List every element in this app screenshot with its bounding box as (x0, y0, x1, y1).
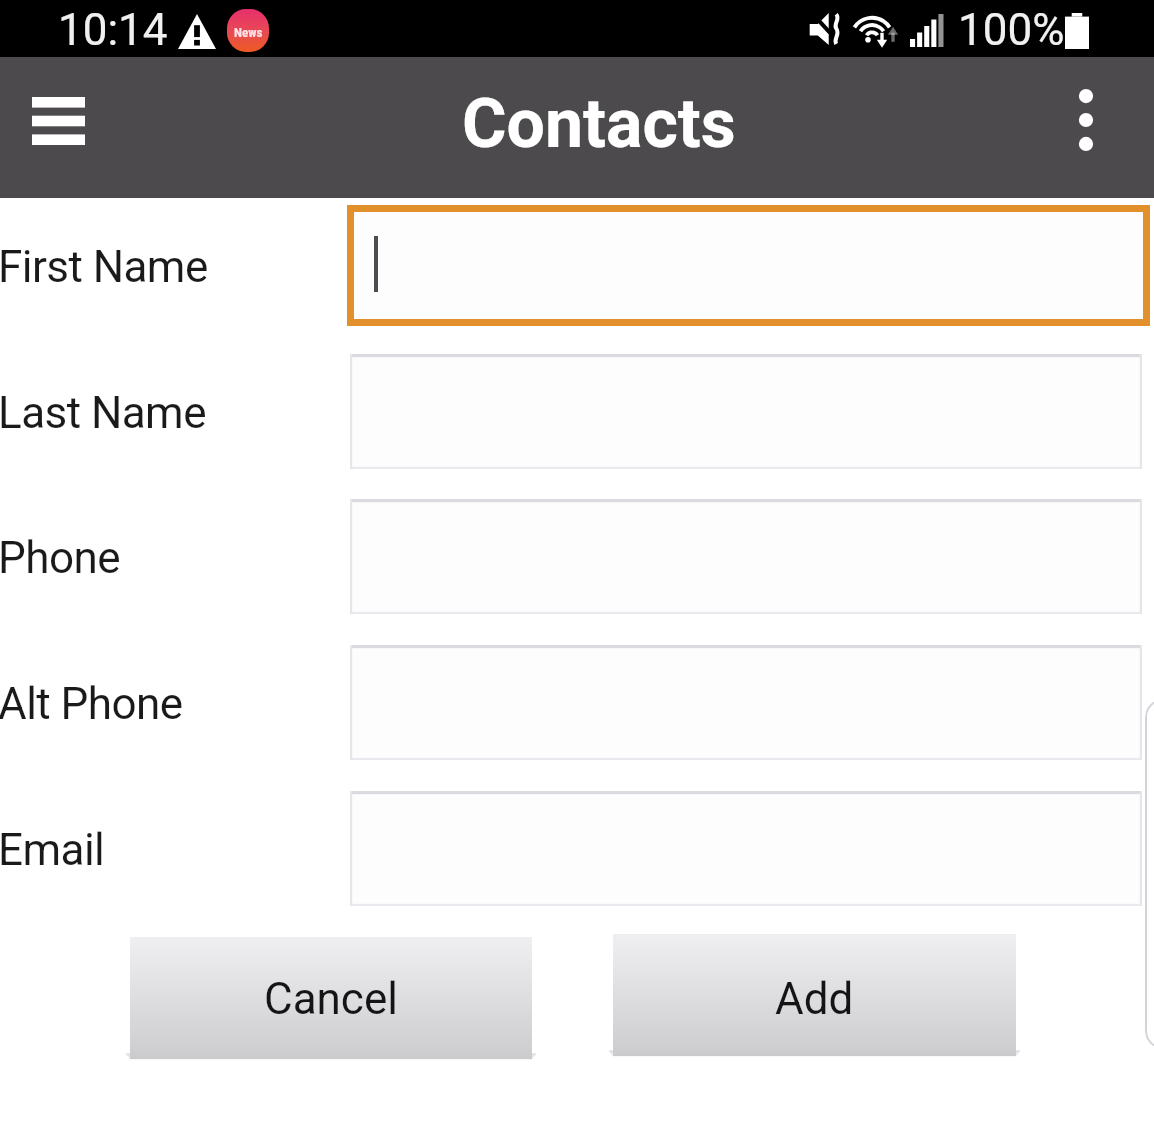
button[interactable]: Open navigation menu (0, 63, 116, 179)
button[interactable] (350, 354, 1142, 469)
staticText: Phone (0, 532, 120, 584)
staticText: Cancel (264, 973, 398, 1025)
button[interactable] (350, 499, 1142, 614)
button[interactable]: Cancel (130, 937, 532, 1059)
button[interactable] (347, 205, 1150, 326)
button[interactable]: More options (1044, 65, 1128, 175)
staticText: Add (775, 973, 854, 1025)
staticText: 10:14 (58, 4, 168, 56)
button[interactable] (350, 645, 1142, 760)
staticText: First Name (0, 241, 208, 293)
staticText: Last Name (0, 387, 206, 439)
staticText: News (234, 25, 263, 40)
staticText: Alt Phone (0, 678, 183, 730)
staticText: Contacts (462, 84, 736, 164)
staticText: Email (0, 824, 105, 876)
button[interactable] (350, 791, 1142, 906)
button[interactable]: Add (613, 934, 1016, 1056)
staticText: 100% (958, 4, 1065, 56)
